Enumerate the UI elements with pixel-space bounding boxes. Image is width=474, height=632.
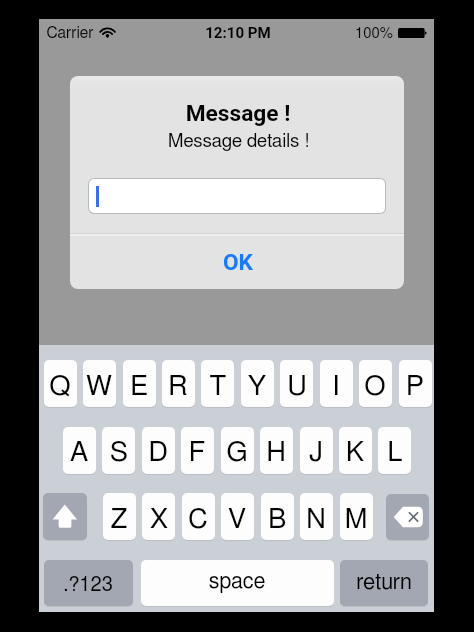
button[interactable] [44, 360, 77, 407]
button[interactable] [221, 493, 254, 540]
staticText: K [175, 439, 474, 466]
button[interactable] [142, 427, 175, 474]
button[interactable] [70, 234, 404, 289]
button[interactable] [44, 560, 133, 606]
button[interactable] [83, 360, 116, 407]
button[interactable] [182, 493, 215, 540]
button[interactable] [241, 360, 274, 407]
staticText: R [0, 373, 358, 400]
staticText: Z [0, 506, 299, 533]
staticText: B [97, 506, 457, 533]
staticText: Q [0, 373, 240, 400]
staticText: H [96, 439, 456, 466]
staticText: Carrier [0, 25, 250, 41]
button[interactable] [260, 427, 293, 474]
staticText: space [57, 571, 417, 593]
staticText: D [0, 439, 338, 466]
staticText: F [17, 439, 377, 466]
staticText: A [0, 439, 259, 466]
button[interactable] [378, 427, 411, 474]
staticText: G [57, 439, 417, 466]
staticText: Message details ! [59, 132, 419, 151]
staticText: I [156, 373, 474, 400]
button[interactable] [340, 493, 373, 540]
staticText: Message ! [58, 100, 418, 127]
button[interactable] [181, 427, 214, 474]
button[interactable] [359, 360, 392, 407]
staticText: E [0, 373, 319, 400]
button[interactable] [280, 360, 313, 407]
button[interactable] [102, 427, 135, 474]
staticText: U [117, 373, 474, 400]
staticText: T [38, 373, 398, 400]
button[interactable] [103, 493, 136, 540]
staticText: W [0, 373, 279, 400]
button[interactable] [340, 560, 428, 606]
button[interactable] [142, 493, 175, 540]
button[interactable] [201, 360, 234, 407]
staticText: J [136, 439, 474, 466]
staticText: .?123 [0, 575, 268, 595]
button[interactable] [300, 493, 333, 540]
staticText: 12:10 PM [58, 24, 418, 42]
staticText: N [136, 506, 474, 533]
other: Battery full [398, 28, 427, 38]
other: Wi-Fi signal [100, 27, 115, 38]
button[interactable] [63, 427, 96, 474]
button[interactable] [141, 560, 334, 606]
staticText: M [176, 506, 474, 533]
staticText: V [57, 506, 417, 533]
staticText: X [0, 506, 339, 533]
button[interactable] [300, 427, 333, 474]
staticText: return [204, 571, 474, 593]
staticText: O [195, 373, 474, 400]
staticText: C [18, 506, 378, 533]
button[interactable]: Shift [43, 493, 87, 540]
button[interactable] [162, 360, 195, 407]
button[interactable] [221, 427, 254, 474]
button[interactable] [320, 360, 353, 407]
staticText: S [0, 439, 299, 466]
staticText: Y [77, 373, 437, 400]
staticText: L [215, 439, 474, 466]
staticText: P [235, 373, 474, 400]
button[interactable] [123, 360, 156, 407]
staticText: OK [58, 249, 418, 275]
button[interactable] [399, 360, 432, 407]
button[interactable] [261, 493, 294, 540]
button[interactable]: Text input field [88, 178, 386, 214]
staticText: 100% [194, 26, 474, 41]
button[interactable]: Backspace [386, 494, 429, 540]
button[interactable] [339, 427, 372, 474]
